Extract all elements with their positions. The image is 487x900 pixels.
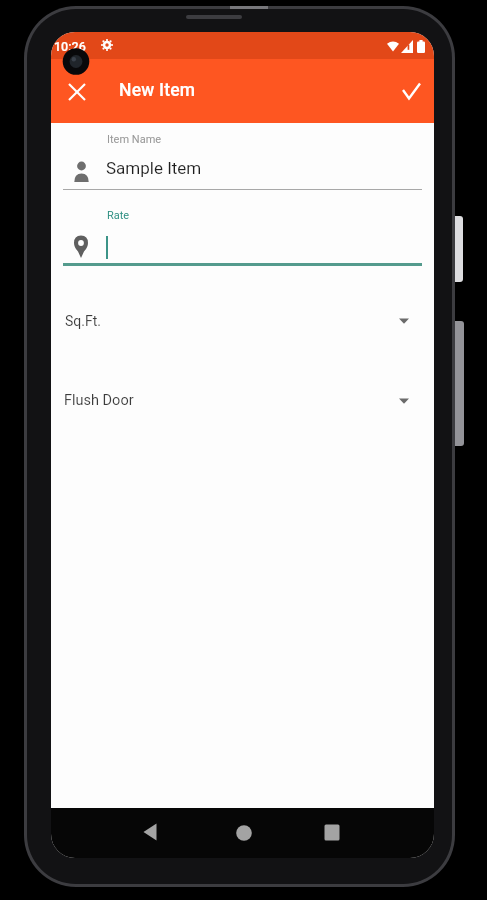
staticText: Sq.Ft. <box>65 313 101 329</box>
button[interactable] <box>130 812 170 852</box>
staticText: Flush Door <box>64 392 134 409</box>
button[interactable] <box>224 813 264 853</box>
staticText: Sample Item <box>106 158 202 178</box>
staticText: Item Name <box>107 133 162 146</box>
button[interactable]: Sq.Ft. <box>51 302 434 344</box>
button[interactable]: Flush Door <box>51 382 434 424</box>
button[interactable] <box>387 71 427 111</box>
button[interactable] <box>63 229 422 263</box>
staticText: 10:26 <box>54 39 86 54</box>
staticText: New Item <box>119 80 196 101</box>
staticText: Rate <box>107 209 130 222</box>
button[interactable] <box>57 71 97 111</box>
button[interactable] <box>312 813 352 853</box>
button[interactable]: Sample Item <box>63 154 422 191</box>
